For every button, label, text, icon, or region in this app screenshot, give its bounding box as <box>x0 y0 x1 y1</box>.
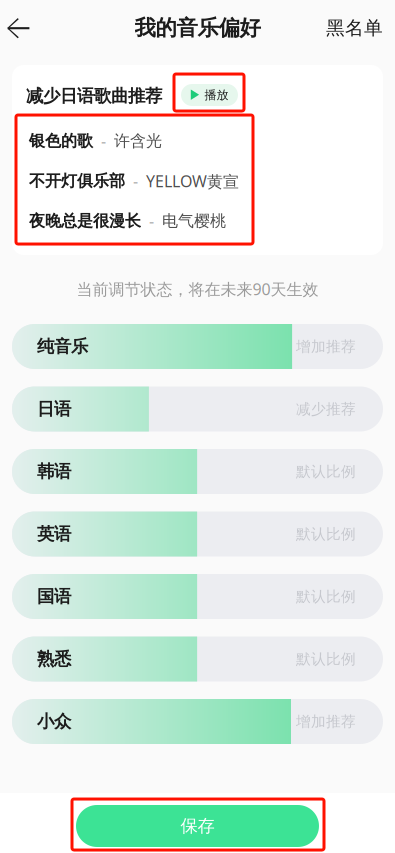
staticText: 播放 <box>204 88 228 102</box>
staticText: 增加推荐 <box>296 337 356 355</box>
staticText: 韩语 <box>37 461 71 482</box>
staticText: 银色的歌 <box>29 131 93 151</box>
staticText: 夜晚总是很漫长 <box>29 211 141 231</box>
staticText: 纯音乐 <box>37 336 88 357</box>
staticText: 黑名单 <box>326 16 383 39</box>
staticText: 国语 <box>37 586 71 607</box>
staticText: 默认比例 <box>296 650 356 668</box>
staticText: - <box>93 130 114 152</box>
button[interactable]: 国语 <box>12 574 383 619</box>
staticText: 减少日语歌曲推荐 <box>26 85 162 107</box>
button[interactable]: 纯音乐 <box>12 324 383 369</box>
button[interactable]: 保存 <box>76 805 319 847</box>
button[interactable]: 熟悉 <box>12 636 383 681</box>
button[interactable]: 英语 <box>12 511 383 556</box>
staticText: 日语 <box>37 398 71 420</box>
staticText: 电气樱桃 <box>162 211 226 231</box>
button[interactable]: 小众 <box>12 699 383 744</box>
staticText: 我的音乐偏好 <box>134 15 260 41</box>
staticText: 增加推荐 <box>296 712 356 730</box>
button[interactable]: 日语 <box>12 386 383 431</box>
staticText: 减少推荐 <box>296 400 356 418</box>
staticText: 不开灯俱乐部 <box>29 171 125 191</box>
staticText: 熟悉 <box>37 648 71 670</box>
staticText: YELLOW黄宣 <box>146 170 239 192</box>
staticText: 默认比例 <box>296 587 356 605</box>
staticText: 保存 <box>180 815 214 837</box>
staticText: 英语 <box>37 523 71 545</box>
staticText: 小众 <box>37 711 71 732</box>
button[interactable]: 播放 <box>181 84 238 106</box>
button[interactable]: 返回 <box>0 7 40 51</box>
button[interactable]: 黑名单 <box>313 6 383 50</box>
staticText: 当前调节状态，将在未来90天生效 <box>76 278 318 300</box>
staticText: - <box>141 210 162 232</box>
staticText: 许含光 <box>114 131 162 151</box>
staticText: 默认比例 <box>296 525 356 543</box>
button[interactable]: 韩语 <box>12 449 383 494</box>
staticText: - <box>125 170 146 192</box>
staticText: 默认比例 <box>296 462 356 480</box>
